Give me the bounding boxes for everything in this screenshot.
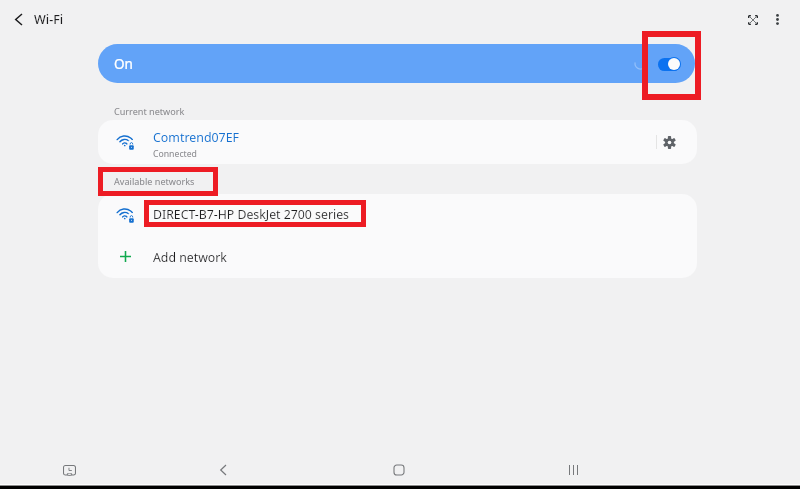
button[interactable]: Network settings [657,120,681,164]
button[interactable]: On [98,44,695,83]
button[interactable]: Comtrend07EF [98,120,697,164]
staticText: Add network [153,249,227,266]
button[interactable]: Screen timeout [54,455,84,485]
staticText: Current network [114,105,185,117]
staticText: Wi-Fi [34,11,64,28]
button[interactable]: Add network [98,236,697,278]
button[interactable]: Wi-Fi [34,7,64,32]
staticText: On [114,55,133,73]
staticText: Connected [153,148,197,160]
button[interactable]: Back [208,455,238,485]
staticText: Comtrend07EF [153,129,240,146]
staticText: DIRECT-B7-HP DeskJet 2700 series [153,206,349,223]
button[interactable]: Scan QR code [740,7,765,32]
button[interactable]: Home [384,455,414,485]
button[interactable]: More options [765,7,790,32]
staticText: Available networks [114,175,195,187]
button[interactable]: Recents [558,455,588,485]
button[interactable]: Back [6,7,31,32]
button[interactable]: DIRECT-B7-HP DeskJet 2700 series [98,194,697,236]
button[interactable]: Wi-Fi on toggle [658,57,681,71]
